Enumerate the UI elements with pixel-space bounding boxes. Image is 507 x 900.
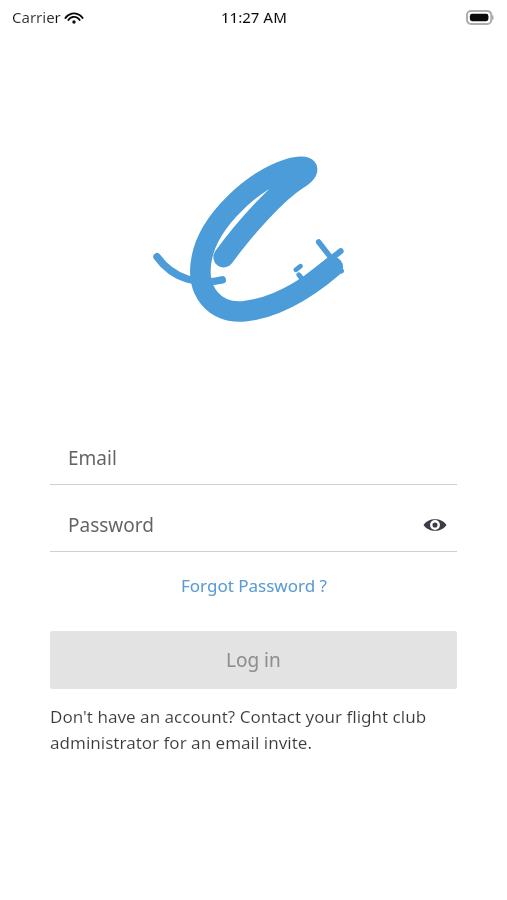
button[interactable]: Log in [50,631,457,689]
staticText: Carrier [12,7,61,27]
button[interactable]: Email [50,432,457,484]
staticText: Forgot Password ? [181,574,327,597]
button[interactable]: Password [50,499,457,551]
staticText: Password [68,512,154,538]
staticText: Don't have an account? Contact your flig… [50,705,457,754]
staticText: 11:27 AM [221,7,287,27]
button[interactable]: Forgot Password ? [171,568,337,603]
button[interactable]: Show password [413,503,457,547]
staticText: Log in [226,647,281,673]
staticText: Email [68,445,117,471]
